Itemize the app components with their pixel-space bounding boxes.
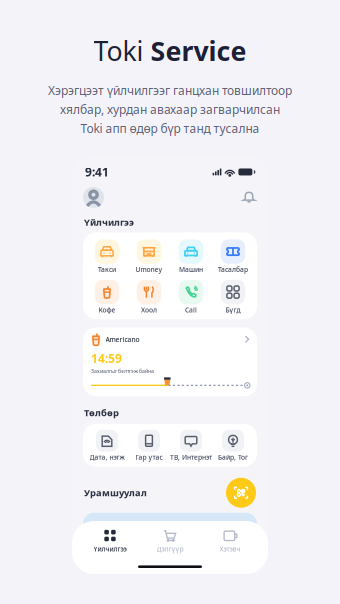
staticText: Захиалгыг бэлтгэж байна: [91, 367, 154, 374]
staticText: Call: [185, 305, 197, 314]
staticText: Урамшуулал: [84, 486, 147, 499]
button[interactable]: Notifications: [241, 189, 257, 205]
staticText: ТВ, Интернэт: [170, 453, 212, 462]
staticText: Машин: [179, 265, 203, 274]
button[interactable]: Машин: [170, 239, 212, 275]
button[interactable]: Americano: [83, 327, 257, 396]
staticText: Хэрэгцээт үйлчилгээг ганцхан товшилтоор: [48, 82, 292, 98]
button[interactable]: Profile: [83, 187, 104, 208]
staticText: Такси: [98, 265, 116, 274]
staticText: Дата, нэгж: [89, 453, 124, 462]
staticText: Үйлчилгээ: [84, 216, 134, 228]
staticText: Тасалбар: [218, 265, 248, 274]
button[interactable]: Хэтэвч: [200, 526, 260, 556]
staticText: Umoney: [135, 265, 162, 274]
staticText: 14:59: [91, 350, 122, 366]
staticText: Төлбөр: [84, 406, 119, 419]
button[interactable]: Дата, нэгж: [86, 430, 128, 463]
staticText: Хоол: [141, 305, 157, 314]
button[interactable]: Дэлгүүр: [140, 526, 200, 556]
staticText: Үйлчилгээ: [93, 544, 126, 553]
button[interactable]: Үйлчилгээ: [80, 526, 140, 556]
button[interactable]: Тасалбар: [212, 239, 254, 275]
button[interactable]: Umoney: [128, 239, 170, 275]
button[interactable]: Scan QR code: [226, 478, 256, 508]
button[interactable]: Такси: [86, 239, 128, 275]
staticText: Хэтэвч: [219, 544, 240, 553]
staticText: 9:41: [85, 164, 109, 180]
button[interactable]: ТВ, Интернэт: [170, 430, 212, 463]
button[interactable]: Хоол: [128, 280, 170, 315]
button[interactable]: Call: [170, 280, 212, 315]
staticText: Americano: [105, 335, 139, 344]
staticText: Гар утас: [135, 453, 162, 462]
staticText: хялбар, хурдан авахаар загварчилсан: [60, 101, 280, 117]
staticText: Бүгд: [225, 305, 240, 314]
staticText: Toki Service: [93, 33, 246, 68]
button[interactable]: Кофе: [86, 280, 128, 315]
staticText: Toki апп өдөр бүр танд тусална: [80, 120, 259, 136]
staticText: Дэлгүүр: [156, 544, 183, 553]
staticText: Байр, Тог: [218, 453, 248, 462]
button[interactable]: Бүгд: [212, 280, 254, 315]
staticText: Кофе: [98, 305, 115, 314]
button[interactable]: Гар утас: [128, 430, 170, 463]
button[interactable]: Байр, Тог: [212, 430, 254, 463]
